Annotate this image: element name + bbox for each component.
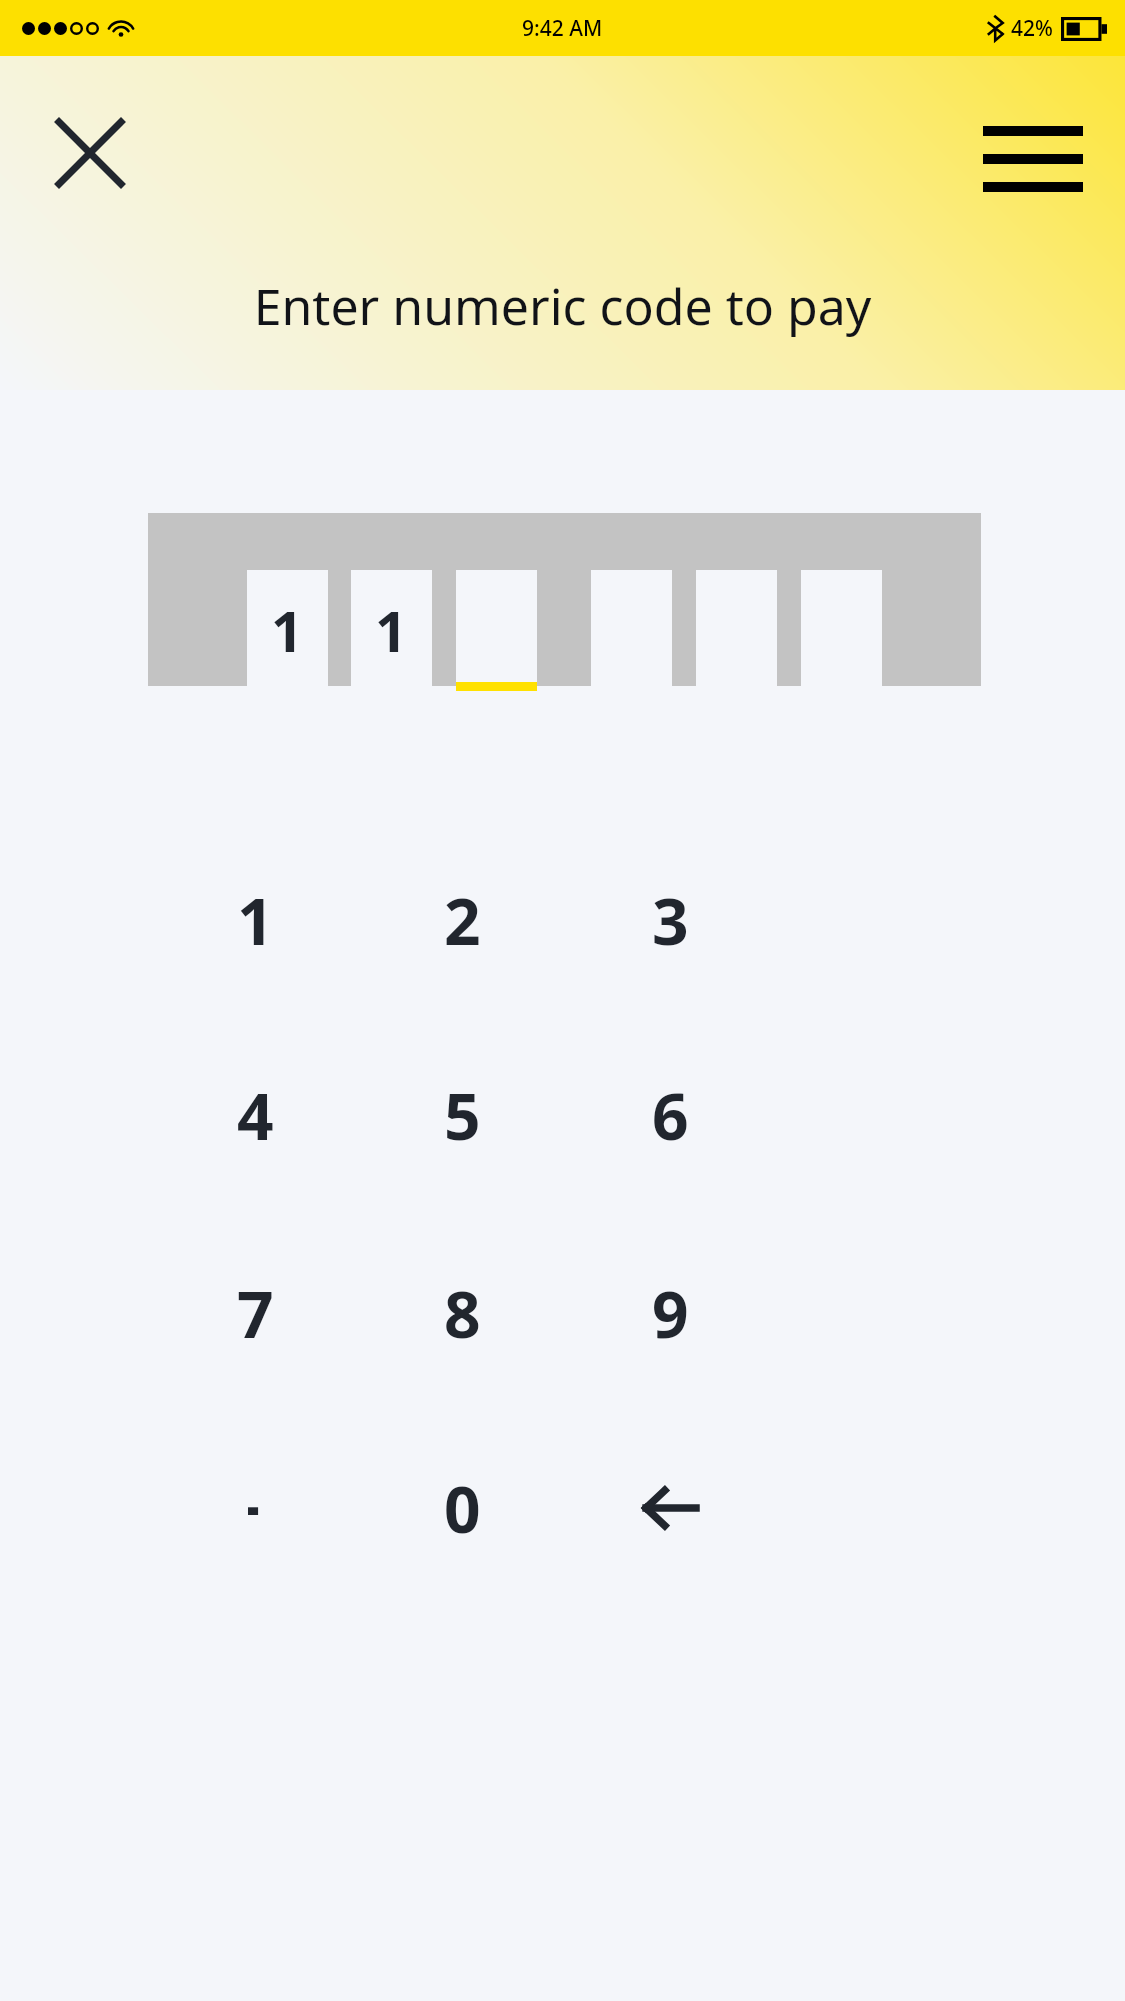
- button[interactable]: 5: [372, 1025, 552, 1205]
- staticText: 9: [652, 1270, 689, 1357]
- staticText: 4: [237, 1072, 274, 1159]
- button[interactable]: 6: [580, 1025, 760, 1205]
- button[interactable]: 9: [580, 1223, 760, 1403]
- button[interactable]: [165, 1418, 345, 1598]
- button[interactable]: Menu: [988, 124, 1078, 194]
- button[interactable]: 1: [247, 570, 328, 691]
- staticText: 5: [444, 1072, 481, 1159]
- button[interactable]: 8: [372, 1223, 552, 1403]
- staticText: 3: [652, 877, 689, 964]
- button[interactable]: Close: [55, 118, 125, 188]
- staticText: 1: [375, 592, 408, 668]
- staticText: 8: [444, 1270, 481, 1357]
- button[interactable]: 4: [165, 1025, 345, 1205]
- staticText: 2: [444, 877, 481, 964]
- button[interactable]: [456, 570, 537, 691]
- staticText: 7: [237, 1270, 274, 1357]
- button[interactable]: 0: [372, 1418, 552, 1598]
- button[interactable]: 1: [351, 570, 432, 691]
- staticText: Enter numeric code to pay: [0, 272, 1125, 340]
- button[interactable]: Backspace: [580, 1418, 760, 1598]
- staticText: 6: [652, 1072, 689, 1159]
- button[interactable]: 3: [580, 830, 760, 1010]
- button[interactable]: 7: [165, 1223, 345, 1403]
- staticText: 9:42 AM: [522, 14, 603, 43]
- button[interactable]: 1: [165, 830, 345, 1010]
- button[interactable]: 2: [372, 830, 552, 1010]
- staticText: 42%: [1011, 14, 1053, 43]
- staticText: 0: [444, 1465, 481, 1552]
- staticText: 1: [271, 592, 304, 668]
- staticText: 1: [237, 877, 274, 964]
